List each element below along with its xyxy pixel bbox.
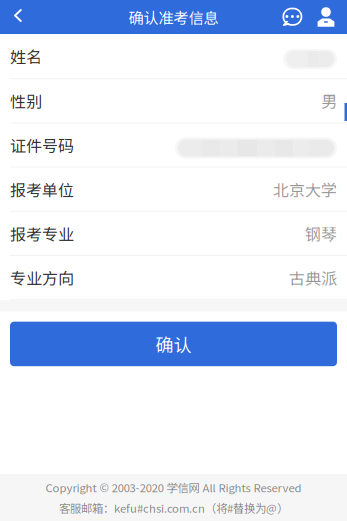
staticText: 报考专业 bbox=[10, 222, 74, 245]
staticText: 报考单位 bbox=[10, 178, 74, 201]
staticText: 性别 bbox=[10, 89, 42, 112]
staticText: 确认准考信息 bbox=[128, 6, 218, 28]
staticText: 客服邮箱：kefu#chsi.com.cn（将#替换为@） bbox=[59, 499, 288, 516]
staticText: 姓名 bbox=[10, 44, 42, 68]
button[interactable]: Account bbox=[312, 0, 340, 34]
staticText: 确认 bbox=[155, 331, 191, 357]
staticText: 北京大学 bbox=[273, 178, 337, 201]
staticText: 古典派 bbox=[289, 266, 337, 289]
staticText: Copyright © 2003-2020 学信网 All Rights Res… bbox=[45, 479, 301, 495]
button[interactable]: Back bbox=[0, 0, 36, 34]
staticText: 专业方向 bbox=[10, 266, 74, 289]
staticText: 钢琴 bbox=[305, 222, 337, 245]
staticText: 证件号码 bbox=[10, 133, 74, 157]
button[interactable]: 确认 bbox=[0, 322, 347, 366]
staticText: 男 bbox=[321, 89, 337, 112]
button[interactable]: Customer service bbox=[276, 0, 308, 34]
